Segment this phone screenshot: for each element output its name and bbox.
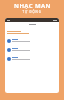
staticText: TỰ ĐỘNG bbox=[22, 10, 42, 14]
button[interactable] bbox=[5, 45, 59, 54]
button[interactable] bbox=[5, 54, 59, 63]
staticText: NHẠC MAN bbox=[14, 2, 51, 10]
button[interactable] bbox=[5, 36, 59, 45]
